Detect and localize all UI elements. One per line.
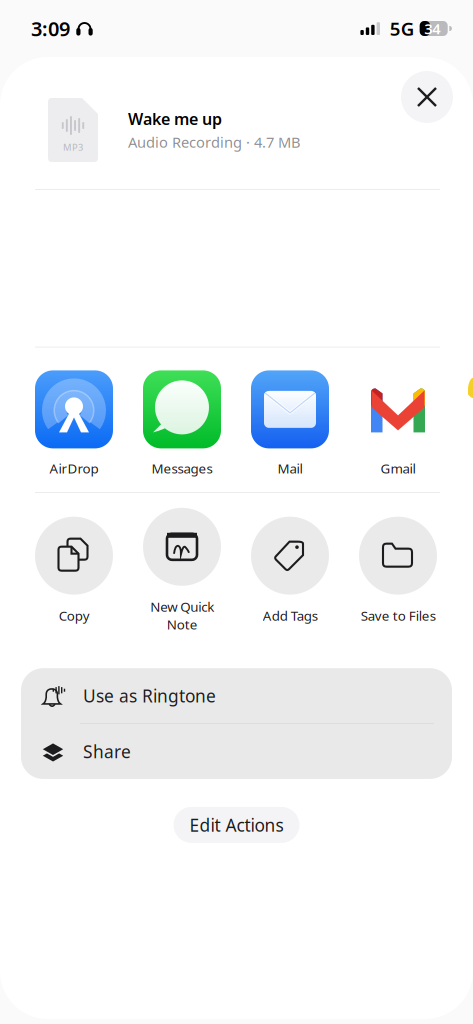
staticText: Mail xyxy=(277,459,302,477)
button[interactable]: Edit Actions xyxy=(173,807,299,843)
button[interactable]: Close xyxy=(401,71,453,123)
staticText: 5G xyxy=(390,16,415,41)
staticText: 3:09 xyxy=(31,15,70,42)
staticText: Wake me up xyxy=(128,108,222,129)
button[interactable]: AirDrop xyxy=(35,370,113,477)
button[interactable]: Copy xyxy=(35,517,113,624)
staticText: Gmail xyxy=(380,459,415,477)
button[interactable]: New Quick Note xyxy=(143,508,221,633)
staticText: MP3 xyxy=(63,141,83,153)
staticText: Copy xyxy=(58,607,89,624)
staticText: Save to Files xyxy=(360,607,435,624)
button[interactable]: Share xyxy=(21,724,452,779)
button[interactable]: Mail xyxy=(251,370,329,477)
staticText: Edit Actions xyxy=(189,813,283,836)
staticText: Messages xyxy=(151,459,212,477)
button[interactable]: Use as Ringtone xyxy=(21,668,452,723)
staticText: Use as Ringtone xyxy=(83,684,216,707)
staticText: AirDrop xyxy=(49,459,98,477)
staticText: Audio Recording · 4.7 MB xyxy=(128,132,301,152)
staticText: 34 xyxy=(424,19,440,38)
button[interactable]: Messages xyxy=(143,370,221,477)
button[interactable]: Add Tags xyxy=(251,517,329,624)
staticText: New Quick Note xyxy=(150,598,214,633)
staticText: Add Tags xyxy=(262,607,317,624)
staticText: Share xyxy=(83,740,131,763)
button[interactable]: Save to Files xyxy=(359,517,437,624)
button[interactable]: Gmail xyxy=(359,370,437,477)
